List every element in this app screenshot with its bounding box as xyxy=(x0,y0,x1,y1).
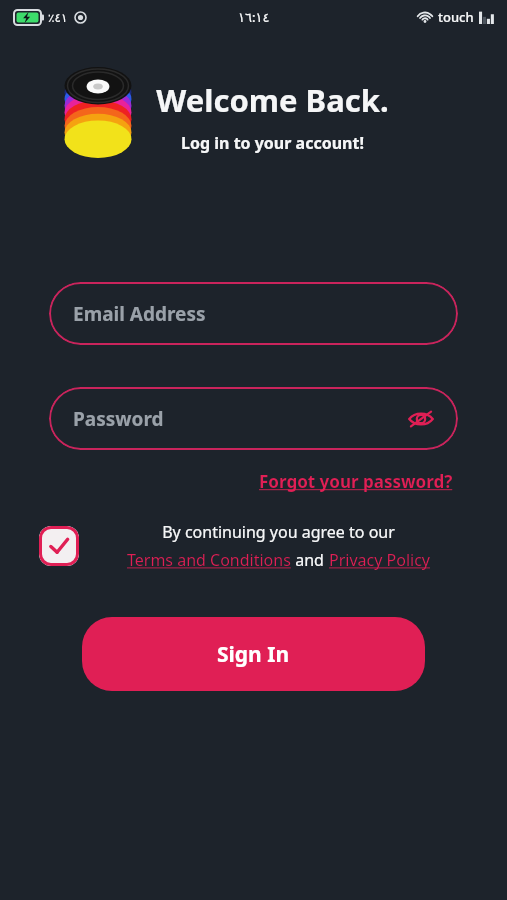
staticText: Welcome Back. xyxy=(156,79,389,121)
staticText: Terms and Conditions xyxy=(127,549,291,571)
button[interactable]: Agree to terms checkbox xyxy=(39,526,79,566)
button[interactable]: Show password xyxy=(404,402,438,436)
staticText: touch xyxy=(438,8,474,26)
staticText: ١٦:١٤ xyxy=(238,8,270,26)
button[interactable]: Terms and Conditions xyxy=(127,549,291,571)
button[interactable]: Forgot your password? xyxy=(255,466,457,497)
staticText: Forgot your password? xyxy=(259,470,453,493)
staticText: ٪٤١ xyxy=(48,11,68,25)
staticText: Password xyxy=(73,406,164,432)
staticText: Email Address xyxy=(73,301,206,327)
button[interactable]: Password xyxy=(49,387,458,450)
staticText: Sign In xyxy=(217,640,290,669)
staticText: Log in to your account! xyxy=(181,132,364,154)
button[interactable]: Sign In xyxy=(82,617,425,691)
button[interactable]: Privacy Policy xyxy=(329,549,430,571)
staticText: By continuing you agree to our xyxy=(162,521,395,543)
staticText: Privacy Policy xyxy=(329,549,430,571)
button[interactable]: Email Address xyxy=(49,282,458,345)
staticText: and xyxy=(291,549,329,571)
